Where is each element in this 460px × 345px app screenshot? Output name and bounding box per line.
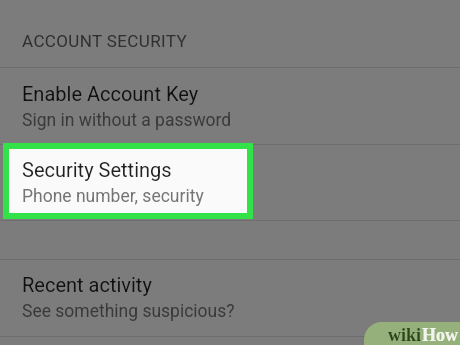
button[interactable]: Recent activity	[0, 260, 460, 336]
staticText: Security Settings	[22, 158, 172, 181]
button[interactable]: Security Settings	[0, 145, 460, 220]
staticText: wiki	[388, 325, 422, 345]
staticText: ACCOUNT SECURITY	[22, 31, 188, 51]
staticText: Phone number, security	[22, 186, 204, 207]
staticText: Sign in without a password	[22, 110, 232, 131]
staticText: Enable Account Key	[22, 82, 199, 105]
staticText: Recent activity	[22, 273, 152, 296]
staticText: See something suspicious?	[22, 301, 235, 322]
button[interactable]: Security Settings	[9, 149, 247, 213]
staticText: Phone number, security	[22, 186, 204, 207]
button[interactable]: Enable Account Key	[0, 68, 460, 144]
staticText: How	[422, 325, 458, 345]
staticText: Security Settings	[22, 158, 172, 181]
